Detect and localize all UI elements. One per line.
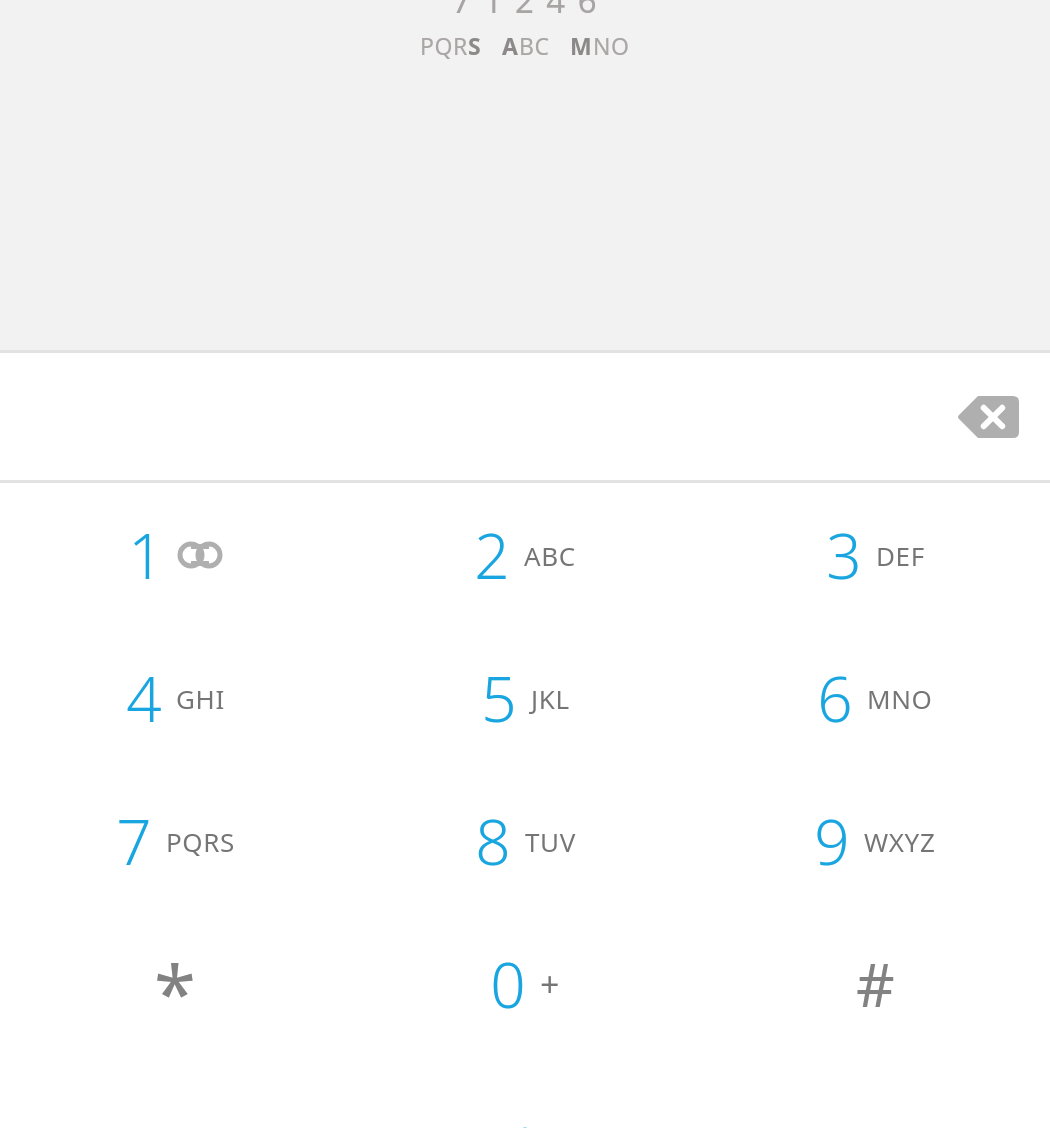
staticText: 4: [126, 656, 162, 740]
button[interactable]: 4: [0, 626, 350, 769]
staticText: 8: [475, 799, 511, 883]
button[interactable]: 3: [700, 483, 1050, 626]
button[interactable]: *: [0, 912, 350, 1055]
staticText: 3: [826, 513, 862, 597]
staticText: 2: [474, 513, 510, 597]
staticText: MNO: [867, 681, 933, 716]
button[interactable]: 5: [350, 626, 700, 769]
staticText: 7 1 2 4 6: [452, 0, 599, 23]
staticText: 1: [128, 513, 164, 597]
staticText: PQRS: [166, 824, 235, 859]
staticText: S: [468, 30, 482, 61]
staticText: GHI: [176, 681, 225, 716]
staticText: PQR: [420, 30, 468, 61]
staticText: JKL: [531, 681, 570, 716]
button[interactable]: #: [700, 912, 1050, 1055]
button[interactable]: Backspace: [944, 379, 1032, 455]
staticText: +: [540, 961, 561, 1007]
staticText: 5: [481, 656, 517, 740]
button[interactable]: 0: [350, 912, 700, 1055]
staticText: TUV: [525, 824, 576, 859]
staticText: NO: [593, 30, 630, 61]
button[interactable]: 7 1 2 4 6: [0, 0, 1050, 350]
staticText: #: [856, 943, 895, 1025]
staticText: 7: [116, 799, 152, 883]
staticText: 0: [490, 942, 526, 1026]
staticText: 9: [814, 799, 850, 883]
button[interactable]: 9: [700, 769, 1050, 912]
staticText: DEF: [876, 538, 925, 573]
staticText: ABC: [524, 538, 576, 573]
button[interactable]: 6: [700, 626, 1050, 769]
button[interactable]: 2: [350, 483, 700, 626]
staticText: 6: [817, 656, 853, 740]
staticText: *: [154, 940, 196, 1044]
button[interactable]: 7: [0, 769, 350, 912]
staticText: A: [502, 30, 519, 61]
staticText: M: [570, 30, 593, 61]
staticText: BC: [519, 30, 550, 61]
button[interactable]: 8: [350, 769, 700, 912]
staticText: WXYZ: [864, 824, 936, 859]
button[interactable]: 1: [0, 483, 350, 626]
